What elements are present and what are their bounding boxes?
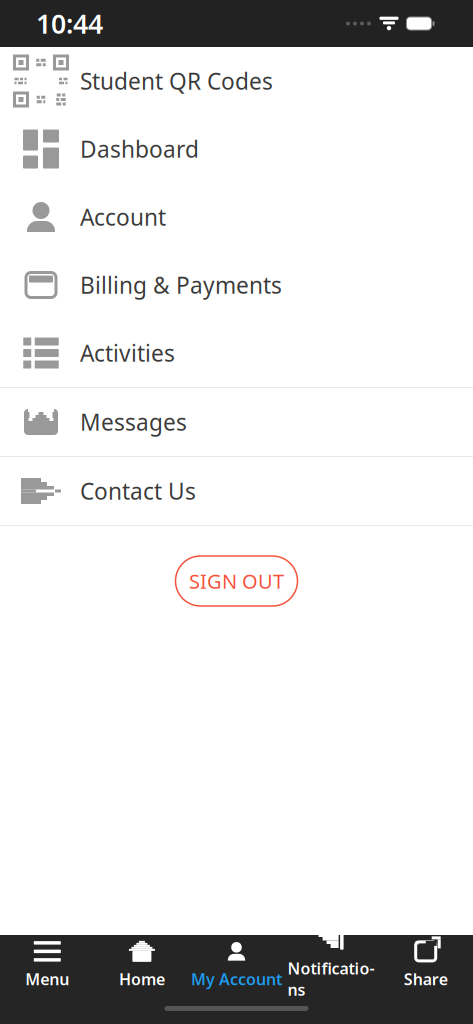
staticText: My Account bbox=[191, 968, 282, 990]
button[interactable]: My Account bbox=[189, 935, 284, 993]
staticText: Activities bbox=[80, 338, 175, 368]
staticText: Notifications bbox=[288, 958, 375, 1000]
staticText: Contact Us bbox=[80, 476, 196, 506]
button[interactable]: Menu bbox=[0, 935, 95, 993]
button[interactable]: SIGN OUT bbox=[175, 556, 297, 606]
button[interactable]: Contact Us bbox=[0, 457, 473, 525]
button[interactable]: Messages bbox=[0, 388, 473, 456]
staticText: Student QR Codes bbox=[80, 66, 273, 96]
staticText: Home bbox=[119, 968, 165, 990]
button[interactable]: Share bbox=[378, 935, 473, 993]
staticText: Billing & Payments bbox=[80, 270, 282, 300]
button[interactable]: Activities bbox=[0, 319, 473, 387]
button[interactable]: Account bbox=[0, 183, 473, 251]
button[interactable]: Student QR Codes bbox=[0, 47, 473, 115]
staticText: Messages bbox=[80, 407, 187, 437]
staticText: Dashboard bbox=[80, 134, 199, 164]
button[interactable]: Billing & Payments bbox=[0, 251, 473, 319]
staticText: Menu bbox=[25, 968, 69, 990]
button[interactable]: Dashboard bbox=[0, 115, 473, 183]
staticText: Account bbox=[80, 202, 166, 232]
staticText: Share bbox=[404, 968, 448, 990]
staticText: SIGN OUT bbox=[189, 568, 284, 594]
staticText: 10:44 bbox=[36, 6, 103, 41]
button[interactable]: Home bbox=[95, 935, 189, 993]
button[interactable]: Notifications bbox=[284, 935, 378, 993]
